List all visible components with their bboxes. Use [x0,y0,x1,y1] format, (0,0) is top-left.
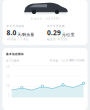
staticText: 天/剩余量 [17,32,34,37]
staticText: 15 [6,75,10,78]
staticText: 元/公里 [62,32,75,37]
staticText: 8.0 [6,28,16,37]
staticText: 20 [6,65,10,69]
staticText: 10 [6,84,10,88]
staticText: 5 [8,94,10,97]
staticText: 近7日能耗 [6,59,20,62]
staticText: +0.6天 / -1.4元 [6,37,28,41]
staticText: 基本信息模块 [6,52,24,56]
staticText: 较上月 -0.03元 [47,37,68,41]
staticText: 平均值 [49,59,58,62]
staticText: 星途瑶光 · 沪A·8888 [30,17,59,20]
staticText: 0.29 [47,28,61,37]
staticText: 12.4 kWh/100km [61,59,84,62]
staticText: 本月平均能耗 [6,24,24,28]
staticText: 本月平均花费 [47,24,65,28]
